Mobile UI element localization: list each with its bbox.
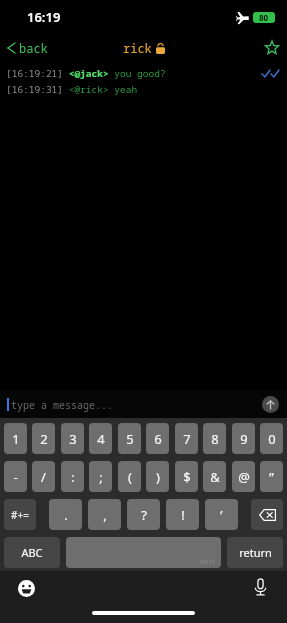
- staticText: back: [19, 40, 48, 56]
- button[interactable]: ?: [127, 499, 160, 530]
- button[interactable]: .: [49, 499, 82, 530]
- button[interactable]: Favorite: [257, 37, 287, 59]
- staticText: $: [183, 468, 191, 486]
- staticText: /: [41, 468, 46, 486]
- button[interactable]: /: [32, 461, 55, 492]
- staticText: ’: [220, 506, 223, 524]
- staticText: :: [71, 468, 75, 486]
- button[interactable]: ABC: [4, 537, 60, 568]
- button[interactable]: $: [175, 461, 198, 492]
- button[interactable]: !: [166, 499, 199, 530]
- button[interactable]: ’: [205, 499, 238, 530]
- button[interactable]: ;: [89, 461, 112, 492]
- button[interactable]: 9: [232, 423, 255, 454]
- button[interactable]: 2: [32, 423, 55, 454]
- button[interactable]: 7: [175, 423, 198, 454]
- staticText: ABC: [21, 545, 43, 560]
- button[interactable]: Send: [262, 396, 279, 413]
- button[interactable]: 3: [61, 423, 84, 454]
- staticText: &: [210, 468, 220, 486]
- button[interactable]: ”: [260, 461, 283, 492]
- staticText: rick: [123, 40, 152, 56]
- staticText: type a message...: [11, 398, 113, 412]
- button[interactable]: 8: [203, 423, 226, 454]
- button[interactable]: type a message...: [0, 390, 287, 418]
- staticText: 9: [240, 430, 248, 448]
- staticText: (: [128, 468, 132, 486]
- staticText: 7: [183, 430, 191, 448]
- staticText: [16:19:31] <@rick> yeah: [6, 83, 138, 96]
- staticText: !: [181, 506, 185, 524]
- button[interactable]: -: [4, 461, 27, 492]
- button[interactable]: 0: [260, 423, 283, 454]
- staticText: return: [239, 545, 272, 560]
- button[interactable]: return: [227, 537, 283, 568]
- staticText: 0: [268, 430, 276, 448]
- staticText: 1: [12, 430, 20, 448]
- staticText: 6: [154, 430, 162, 448]
- button[interactable]: Dictation: [254, 578, 267, 596]
- button[interactable]: :: [61, 461, 84, 492]
- staticText: EN IT: [200, 558, 215, 566]
- button[interactable]: @: [232, 461, 255, 492]
- button[interactable]: Backspace: [251, 499, 283, 530]
- staticText: @: [238, 468, 250, 486]
- button[interactable]: 6: [146, 423, 169, 454]
- button[interactable]: Space: [66, 537, 221, 568]
- staticText: 2: [40, 430, 48, 448]
- staticText: [16:19:21] <@jack> you good?: [6, 67, 166, 80]
- staticText: 8: [211, 430, 219, 448]
- staticText: 3: [69, 430, 77, 448]
- staticText: ?: [141, 506, 147, 524]
- staticText: ;: [99, 468, 103, 486]
- staticText: 4: [97, 430, 105, 448]
- button[interactable]: Emoji: [18, 580, 35, 597]
- button[interactable]: back: [0, 37, 56, 59]
- staticText: ”: [269, 468, 274, 486]
- staticText: #+=: [11, 508, 29, 522]
- button[interactable]: ,: [88, 499, 121, 530]
- staticText: 5: [126, 430, 134, 448]
- staticText: ,: [103, 506, 107, 524]
- button[interactable]: 4: [89, 423, 112, 454]
- staticText: 16:19: [27, 8, 61, 26]
- staticText: -: [13, 468, 18, 486]
- staticText: ): [156, 468, 160, 486]
- button[interactable]: &: [203, 461, 226, 492]
- button[interactable]: #+=: [4, 499, 36, 530]
- button[interactable]: (: [118, 461, 141, 492]
- staticText: .: [64, 506, 68, 524]
- staticText: 80: [259, 12, 269, 23]
- button[interactable]: ): [146, 461, 169, 492]
- button[interactable]: 1: [4, 423, 27, 454]
- button[interactable]: 5: [118, 423, 141, 454]
